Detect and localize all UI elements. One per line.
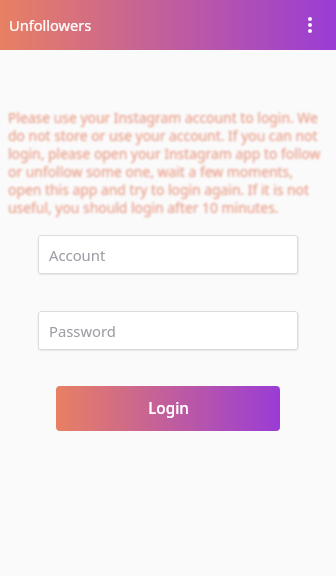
staticText: Please use your Instagram account to log… — [10, 108, 330, 217]
staticText: Account — [49, 245, 106, 265]
staticText: Please use your Instagram account to log… — [9, 110, 329, 219]
button[interactable]: Login — [56, 386, 280, 431]
staticText: Please use your Instagram account to log… — [8, 110, 328, 219]
staticText: Please use your Instagram account to log… — [8, 107, 328, 216]
staticText: Please use your Instagram account to log… — [6, 106, 326, 215]
staticText: Please use your Instagram account to log… — [10, 109, 330, 218]
staticText: Login — [148, 398, 189, 419]
staticText: Please use your Instagram account to log… — [8, 106, 328, 215]
staticText: Please use your Instagram account to log… — [6, 110, 326, 219]
staticText: Please use your Instagram account to log… — [10, 107, 330, 216]
button[interactable]: Password — [38, 311, 298, 350]
staticText: Please use your Instagram account to log… — [8, 108, 328, 217]
staticText: Please use your Instagram account to log… — [7, 110, 327, 219]
staticText: Please use your Instagram account to log… — [7, 107, 327, 216]
staticText: Please use your Instagram account to log… — [6, 109, 326, 218]
staticText: Please use your Instagram account to log… — [6, 108, 326, 217]
staticText: Please use your Instagram account to log… — [9, 107, 329, 216]
staticText: Please use your Instagram account to log… — [6, 107, 326, 216]
staticText: Please use your Instagram account to log… — [8, 109, 328, 218]
button[interactable]: More options — [288, 3, 332, 47]
staticText: Please use your Instagram account to log… — [7, 108, 327, 217]
staticText: Please use your Instagram account to log… — [9, 108, 329, 217]
staticText: Please use your Instagram account to log… — [10, 110, 330, 219]
staticText: Please use your Instagram account to log… — [7, 109, 327, 218]
staticText: Please use your Instagram account to log… — [9, 109, 329, 218]
staticText: Password — [49, 321, 116, 341]
staticText: Please use your Instagram account to log… — [9, 106, 329, 215]
staticText: Please use your Instagram account to log… — [7, 106, 327, 215]
staticText: Unfollowers — [9, 15, 92, 35]
button[interactable]: Account — [38, 235, 298, 274]
staticText: Please use your Instagram account to log… — [10, 106, 330, 215]
